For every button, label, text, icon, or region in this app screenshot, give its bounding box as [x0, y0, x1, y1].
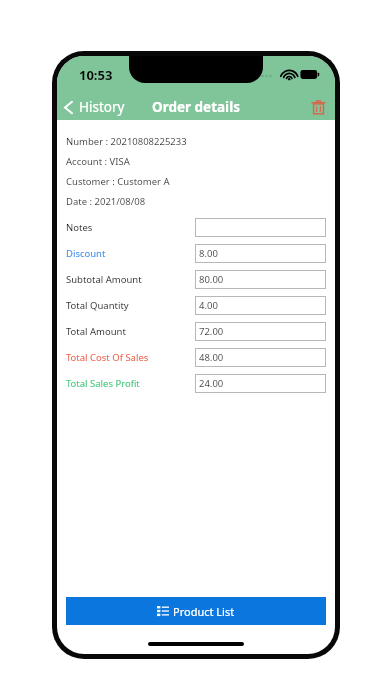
staticText: Product List: [173, 604, 235, 619]
button[interactable]: 8.00: [195, 244, 326, 263]
staticText: Total Sales Profit: [66, 377, 140, 390]
staticText: Account : VISA: [66, 155, 130, 168]
staticText: Total Quantity: [66, 299, 129, 312]
staticText: 48.00: [199, 351, 224, 364]
staticText: 24.00: [199, 377, 224, 390]
button[interactable]: 48.00: [195, 348, 326, 367]
staticText: Date : 2021/08/08: [66, 195, 146, 208]
button[interactable]: 80.00: [195, 270, 326, 289]
staticText: 8.00: [199, 247, 218, 260]
staticText: History: [79, 98, 125, 116]
staticText: Customer : Customer A: [66, 175, 170, 188]
staticText: Notes: [66, 221, 93, 234]
staticText: 80.00: [199, 273, 224, 286]
staticText: Total Amount: [66, 325, 126, 338]
button[interactable]: [195, 218, 326, 237]
button[interactable]: 24.00: [195, 374, 326, 393]
staticText: Total Cost Of Sales: [66, 351, 149, 364]
button[interactable]: Product List: [66, 597, 326, 625]
button[interactable]: 72.00: [195, 322, 326, 341]
button[interactable]: History: [57, 95, 133, 119]
staticText: Number : 20210808225233: [66, 135, 187, 148]
staticText: 72.00: [199, 325, 224, 338]
staticText: Subtotal Amount: [66, 273, 142, 286]
button[interactable]: 4.00: [195, 296, 326, 315]
staticText: Order details: [152, 98, 240, 116]
button[interactable]: Delete: [302, 96, 335, 119]
staticText: 4.00: [199, 299, 218, 312]
staticText: Discount: [66, 247, 106, 260]
staticText: 10:53: [79, 66, 113, 84]
